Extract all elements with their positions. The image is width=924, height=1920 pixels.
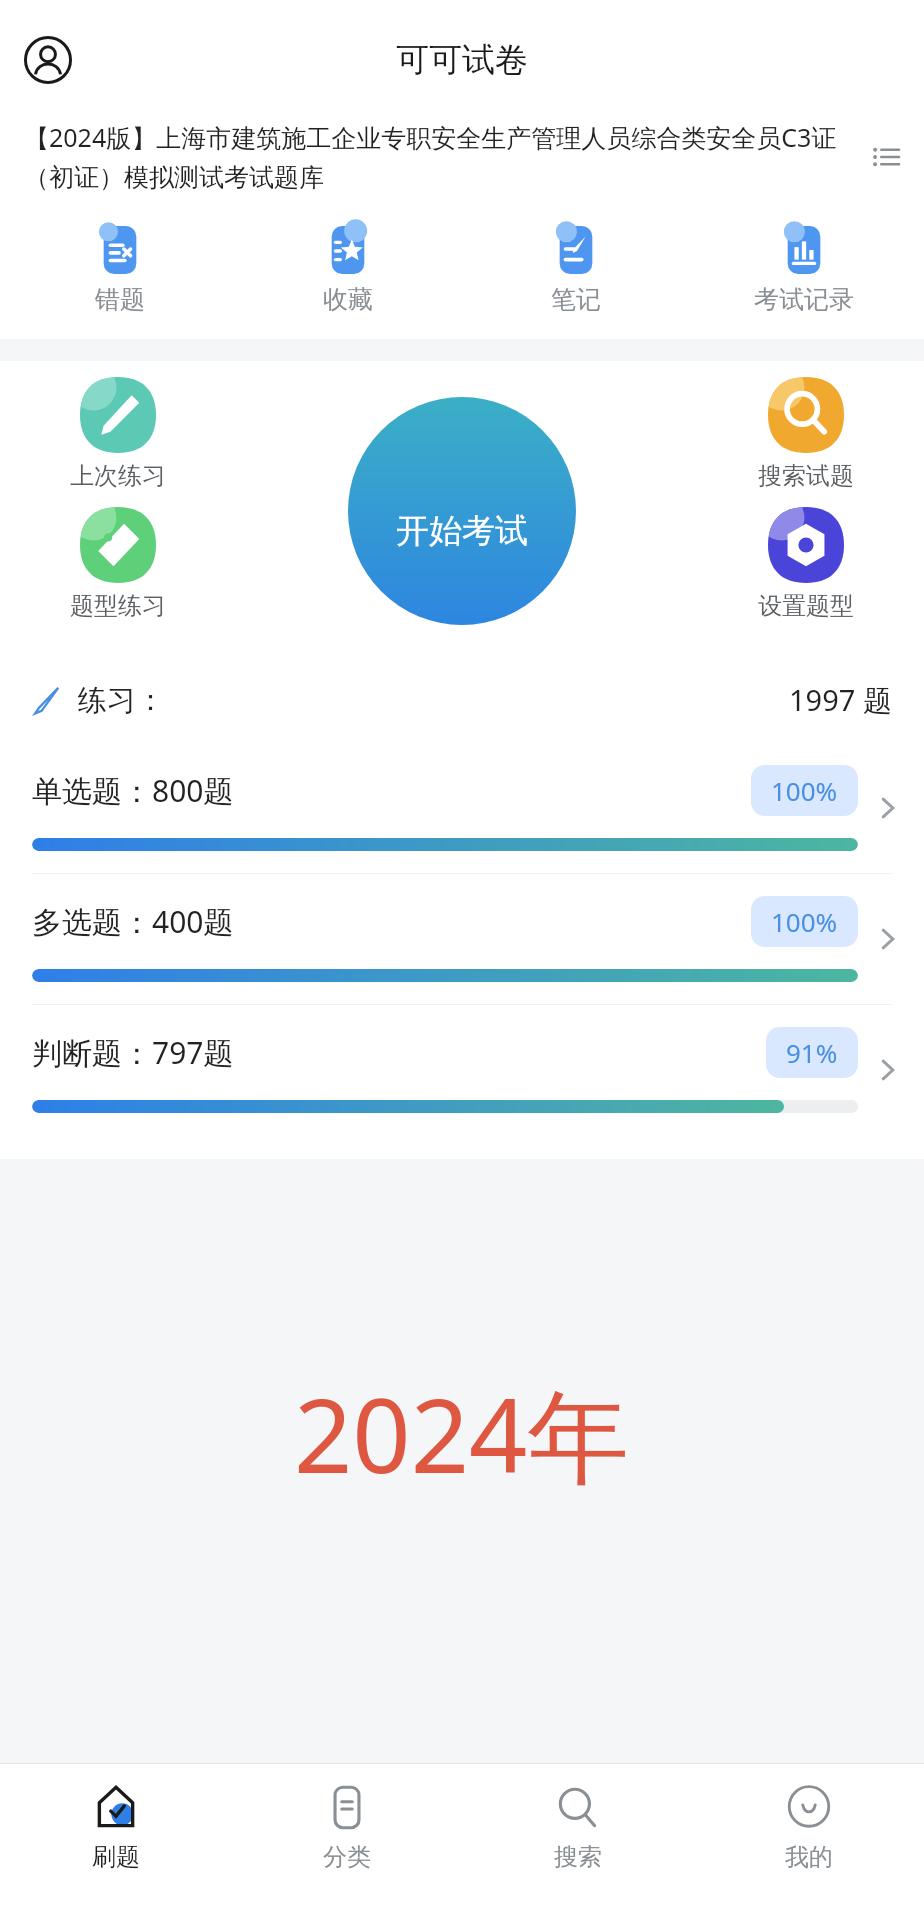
staticText: 考试记录 — [754, 284, 854, 315]
button[interactable]: 收藏 — [234, 222, 462, 319]
button[interactable]: 搜索试题 — [758, 377, 854, 491]
button[interactable]: 考试记录 — [690, 222, 918, 319]
staticText: 1997 题 — [789, 680, 892, 720]
staticText: 练习： — [78, 682, 165, 719]
staticText: 搜索 — [554, 1842, 602, 1872]
staticText: 刷题 — [92, 1842, 140, 1872]
button[interactable]: 多选题：400题 — [0, 873, 924, 1004]
staticText: 设置题型 — [758, 591, 854, 621]
button[interactable]: 判断题：797题 — [0, 1004, 924, 1135]
staticText: 上次练习 — [70, 461, 166, 491]
button[interactable]: 我的 — [693, 1764, 924, 1872]
staticText: 多选题：400题 — [32, 901, 234, 942]
staticText: 笔记 — [551, 284, 601, 315]
staticText: 可可试卷 — [396, 39, 528, 81]
button[interactable]: 题型练习 — [70, 507, 166, 621]
staticText: 收藏 — [323, 284, 373, 315]
button[interactable]: Chapter list — [862, 133, 910, 181]
staticText: 开始考试 — [396, 510, 528, 552]
button[interactable]: 开始考试 — [348, 397, 576, 625]
staticText: 【2024版】上海市建筑施工企业专职安全生产管理人员综合类安全员C3证（初证）模… — [24, 120, 862, 194]
staticText: 单选题：800题 — [32, 770, 234, 811]
staticText: 2024年 — [294, 1364, 630, 1503]
button[interactable]: 错题 — [6, 222, 234, 319]
staticText: 100% — [771, 904, 838, 939]
button[interactable]: 分类 — [231, 1764, 462, 1872]
button[interactable]: 上次练习 — [70, 377, 166, 491]
button[interactable]: 笔记 — [462, 222, 690, 319]
button[interactable]: 设置题型 — [758, 507, 854, 621]
button[interactable]: 刷题 — [0, 1764, 231, 1872]
staticText: 100% — [771, 773, 838, 808]
staticText: 91% — [786, 1035, 838, 1070]
staticText: 分类 — [323, 1842, 371, 1872]
staticText: 错题 — [95, 284, 145, 315]
button[interactable]: 单选题：800题 — [0, 743, 924, 873]
staticText: 我的 — [785, 1842, 833, 1872]
button[interactable]: Profile — [16, 28, 80, 92]
staticText: 搜索试题 — [758, 461, 854, 491]
staticText: 判断题：797题 — [32, 1032, 234, 1073]
staticText: 题型练习 — [70, 591, 166, 621]
button[interactable]: 搜索 — [462, 1764, 693, 1872]
